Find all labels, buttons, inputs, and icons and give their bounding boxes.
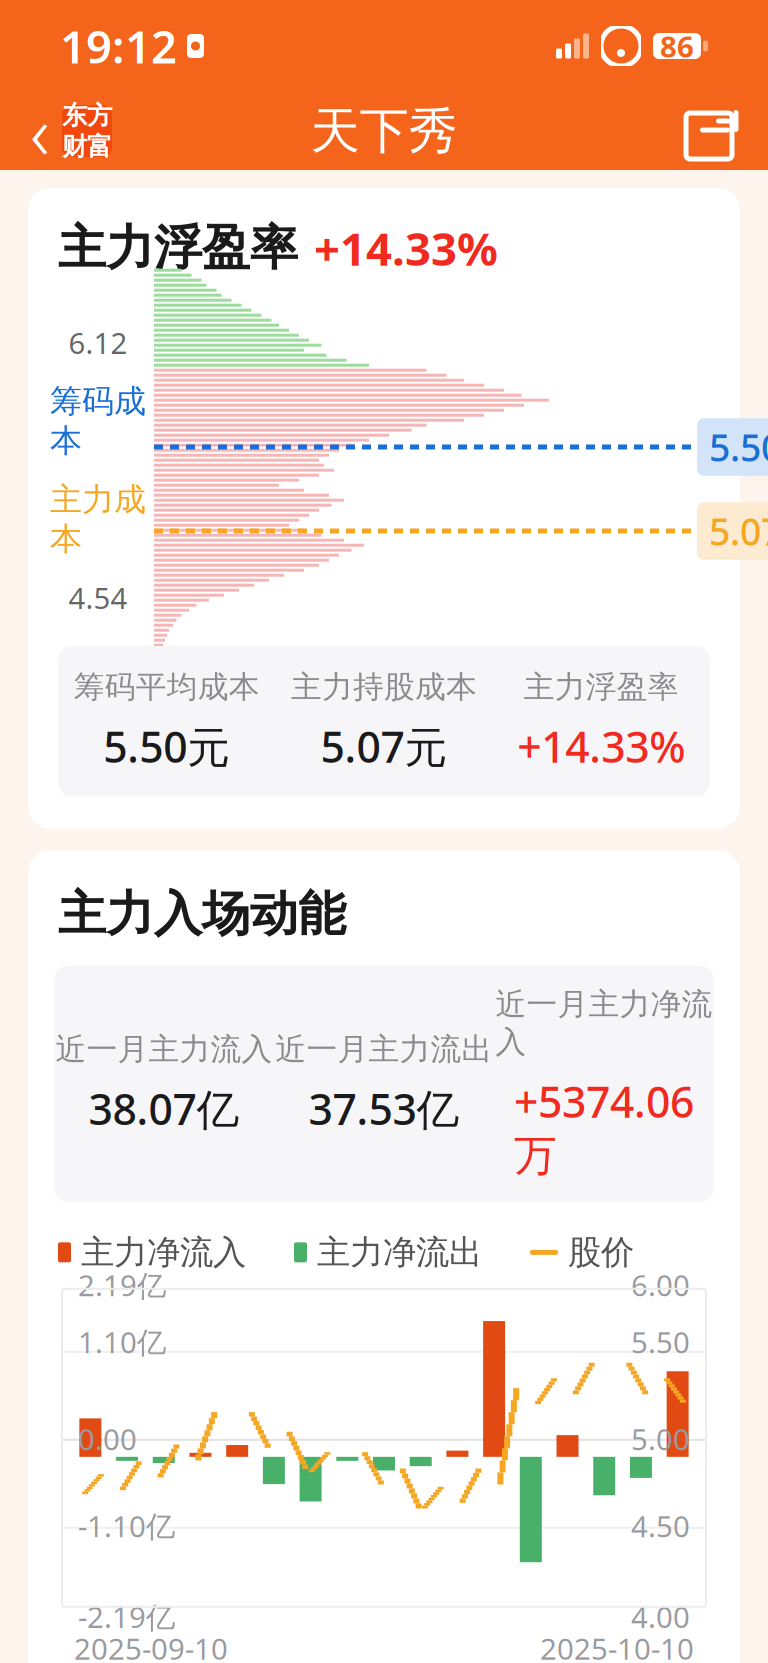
staticText: 5.50 bbox=[631, 1322, 690, 1361]
staticText: 4.00 bbox=[631, 1597, 690, 1636]
staticText: 主力持股成本 bbox=[291, 668, 477, 706]
staticText: 2025-10-10 bbox=[540, 1629, 694, 1663]
staticText: +14.33% bbox=[517, 718, 685, 775]
staticText: 财富 bbox=[62, 131, 112, 162]
staticText: 股价 bbox=[568, 1232, 634, 1273]
staticText: 近一月主力流入 bbox=[55, 1030, 272, 1068]
staticText: 2025-09-10 bbox=[74, 1629, 228, 1663]
button[interactable]: 返回 bbox=[24, 81, 118, 181]
staticText: 1.10亿 bbox=[78, 1322, 166, 1361]
staticText: 5.50元 bbox=[103, 718, 230, 775]
staticText: 主力入场动能 bbox=[58, 884, 346, 943]
staticText: 主力净流入 bbox=[81, 1232, 246, 1273]
staticText: 5.00 bbox=[631, 1419, 690, 1458]
staticText: 19:12 bbox=[60, 16, 177, 76]
staticText: 0.00 bbox=[78, 1419, 137, 1458]
staticText: 4.54 bbox=[68, 578, 127, 617]
button[interactable]: 分享 bbox=[684, 101, 744, 161]
staticText: 86 bbox=[660, 26, 694, 65]
staticText: 5.07元 bbox=[320, 718, 447, 775]
staticText: 主力浮盈率 bbox=[524, 668, 679, 706]
staticText: 4.50 bbox=[631, 1506, 690, 1545]
staticText: 6.00 bbox=[631, 1265, 690, 1304]
staticText: 近一月主力流出 bbox=[275, 1030, 492, 1068]
staticText: 主力成本 bbox=[50, 480, 146, 559]
staticText: 6.12 bbox=[68, 323, 127, 362]
staticText: 2.19亿 bbox=[78, 1265, 166, 1304]
staticText: -1.10亿 bbox=[78, 1506, 175, 1545]
staticText: ‹ bbox=[30, 81, 50, 181]
staticText: 筹码平均成本 bbox=[74, 668, 260, 706]
staticText: 筹码成本 bbox=[50, 382, 146, 460]
staticText: 主力净流出 bbox=[317, 1232, 482, 1273]
staticText: 东方 bbox=[62, 100, 112, 131]
staticText: +5374.06万 bbox=[514, 1073, 694, 1182]
staticText: 近一月主力净流入 bbox=[495, 985, 712, 1061]
staticText: 主力浮盈率 bbox=[58, 219, 298, 278]
staticText: 37.53亿 bbox=[308, 1080, 459, 1137]
staticText: 5.07 bbox=[709, 506, 768, 556]
staticText: +14.33% bbox=[314, 218, 498, 278]
staticText: 38.07亿 bbox=[88, 1080, 239, 1137]
staticText: 5.50 bbox=[709, 422, 768, 472]
staticText: 天下秀 bbox=[310, 101, 457, 161]
staticText: -2.19亿 bbox=[78, 1597, 175, 1636]
